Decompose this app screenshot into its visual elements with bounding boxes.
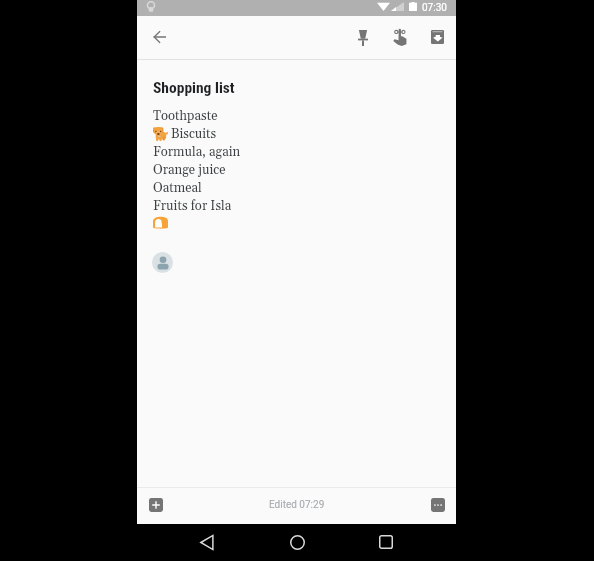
staticText: 07:30 bbox=[422, 2, 447, 14]
staticText: Orange juice bbox=[153, 162, 226, 179]
staticText: Formula, again bbox=[153, 144, 241, 161]
staticText: Shopping list bbox=[153, 79, 235, 97]
button[interactable]: Recent apps bbox=[370, 526, 402, 558]
button[interactable]: Collaborator bbox=[152, 252, 173, 273]
staticText: Edited 07:29 bbox=[269, 499, 325, 511]
button[interactable]: Navigate back bbox=[144, 22, 174, 52]
button[interactable]: Note body bbox=[137, 100, 456, 240]
button[interactable]: Add reminder bbox=[385, 22, 415, 52]
staticText: Toothpaste bbox=[153, 108, 218, 125]
staticText: Biscuits bbox=[171, 126, 217, 143]
button[interactable]: Shopping list bbox=[137, 72, 456, 98]
staticText: Oatmeal bbox=[153, 180, 202, 197]
button[interactable]: Home bbox=[281, 526, 313, 558]
staticText: Fruits for Isla bbox=[153, 198, 232, 215]
button[interactable]: Archive note bbox=[422, 22, 452, 52]
button[interactable]: Add item bbox=[141, 490, 171, 520]
button[interactable]: Pin note bbox=[348, 23, 378, 53]
button[interactable]: More options bbox=[423, 490, 453, 520]
button[interactable]: Back bbox=[191, 526, 223, 558]
